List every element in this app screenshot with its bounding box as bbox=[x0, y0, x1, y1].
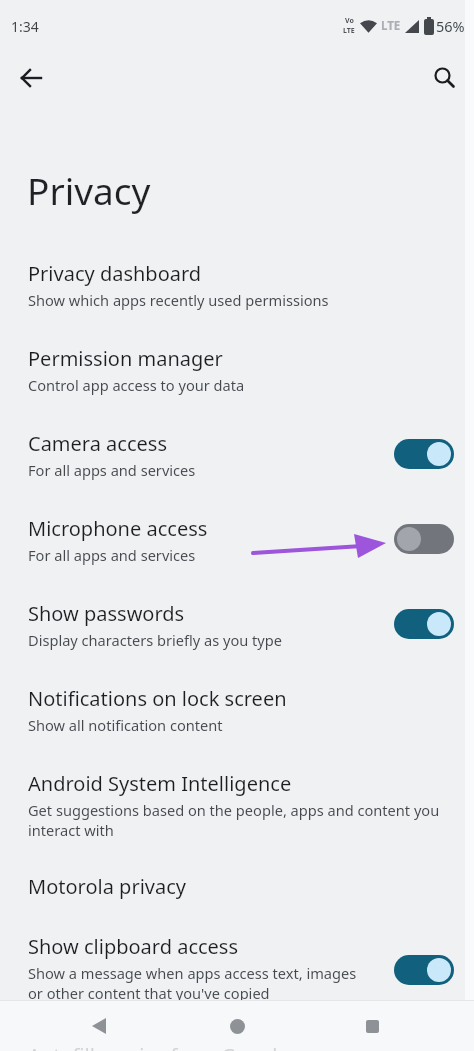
button[interactable]: Camera access bbox=[0, 430, 474, 515]
button[interactable]: Privacy dashboard bbox=[0, 260, 474, 345]
staticText: Microphone access bbox=[28, 515, 208, 542]
button[interactable]: Show clipboard access bbox=[0, 933, 474, 1051]
staticText: Privacy bbox=[27, 165, 151, 215]
button[interactable] bbox=[85, 1012, 113, 1040]
staticText: Get suggestions based on the people, app… bbox=[28, 800, 440, 840]
staticText: Show a message when apps access text, im… bbox=[28, 963, 357, 1003]
button[interactable]: Notifications on lock screen bbox=[0, 685, 474, 770]
staticText: LTE bbox=[343, 26, 355, 36]
button[interactable] bbox=[394, 439, 454, 469]
button[interactable] bbox=[429, 62, 461, 94]
button[interactable] bbox=[394, 524, 454, 554]
staticText: Show all notification content bbox=[28, 715, 223, 735]
staticText: Privacy dashboard bbox=[28, 260, 202, 287]
staticText: 1:34 bbox=[11, 17, 39, 36]
button[interactable]: Android System Intelligence bbox=[0, 770, 474, 873]
staticText: Vo bbox=[345, 16, 354, 26]
staticText: Autofill service from Google bbox=[28, 1042, 289, 1051]
staticText: Show passwords bbox=[28, 600, 185, 627]
button[interactable]: Microphone access bbox=[0, 515, 474, 600]
staticText: Motorola privacy bbox=[28, 873, 186, 900]
staticText: LTE bbox=[381, 18, 401, 34]
staticText: Display characters briefly as you type bbox=[28, 630, 283, 650]
staticText: 56% bbox=[436, 16, 465, 36]
staticText: Permission manager bbox=[28, 345, 223, 372]
button[interactable]: Permission manager bbox=[0, 345, 474, 430]
staticText: Camera access bbox=[28, 430, 167, 457]
button[interactable] bbox=[358, 1012, 386, 1040]
staticText: For all apps and services bbox=[28, 545, 196, 565]
staticText: Show clipboard access bbox=[28, 933, 239, 960]
staticText: Show which apps recently used permission… bbox=[28, 290, 329, 310]
button[interactable]: Motorola privacy bbox=[0, 873, 474, 933]
staticText: Control app access to your data bbox=[28, 375, 245, 395]
staticText: Android System Intelligence bbox=[28, 770, 292, 797]
staticText: Notifications on lock screen bbox=[28, 685, 287, 712]
button[interactable] bbox=[394, 609, 454, 639]
button[interactable]: Show passwords bbox=[0, 600, 474, 685]
staticText: For all apps and services bbox=[28, 460, 196, 480]
button[interactable] bbox=[394, 955, 454, 985]
button[interactable] bbox=[223, 1012, 251, 1040]
button[interactable] bbox=[16, 63, 46, 93]
